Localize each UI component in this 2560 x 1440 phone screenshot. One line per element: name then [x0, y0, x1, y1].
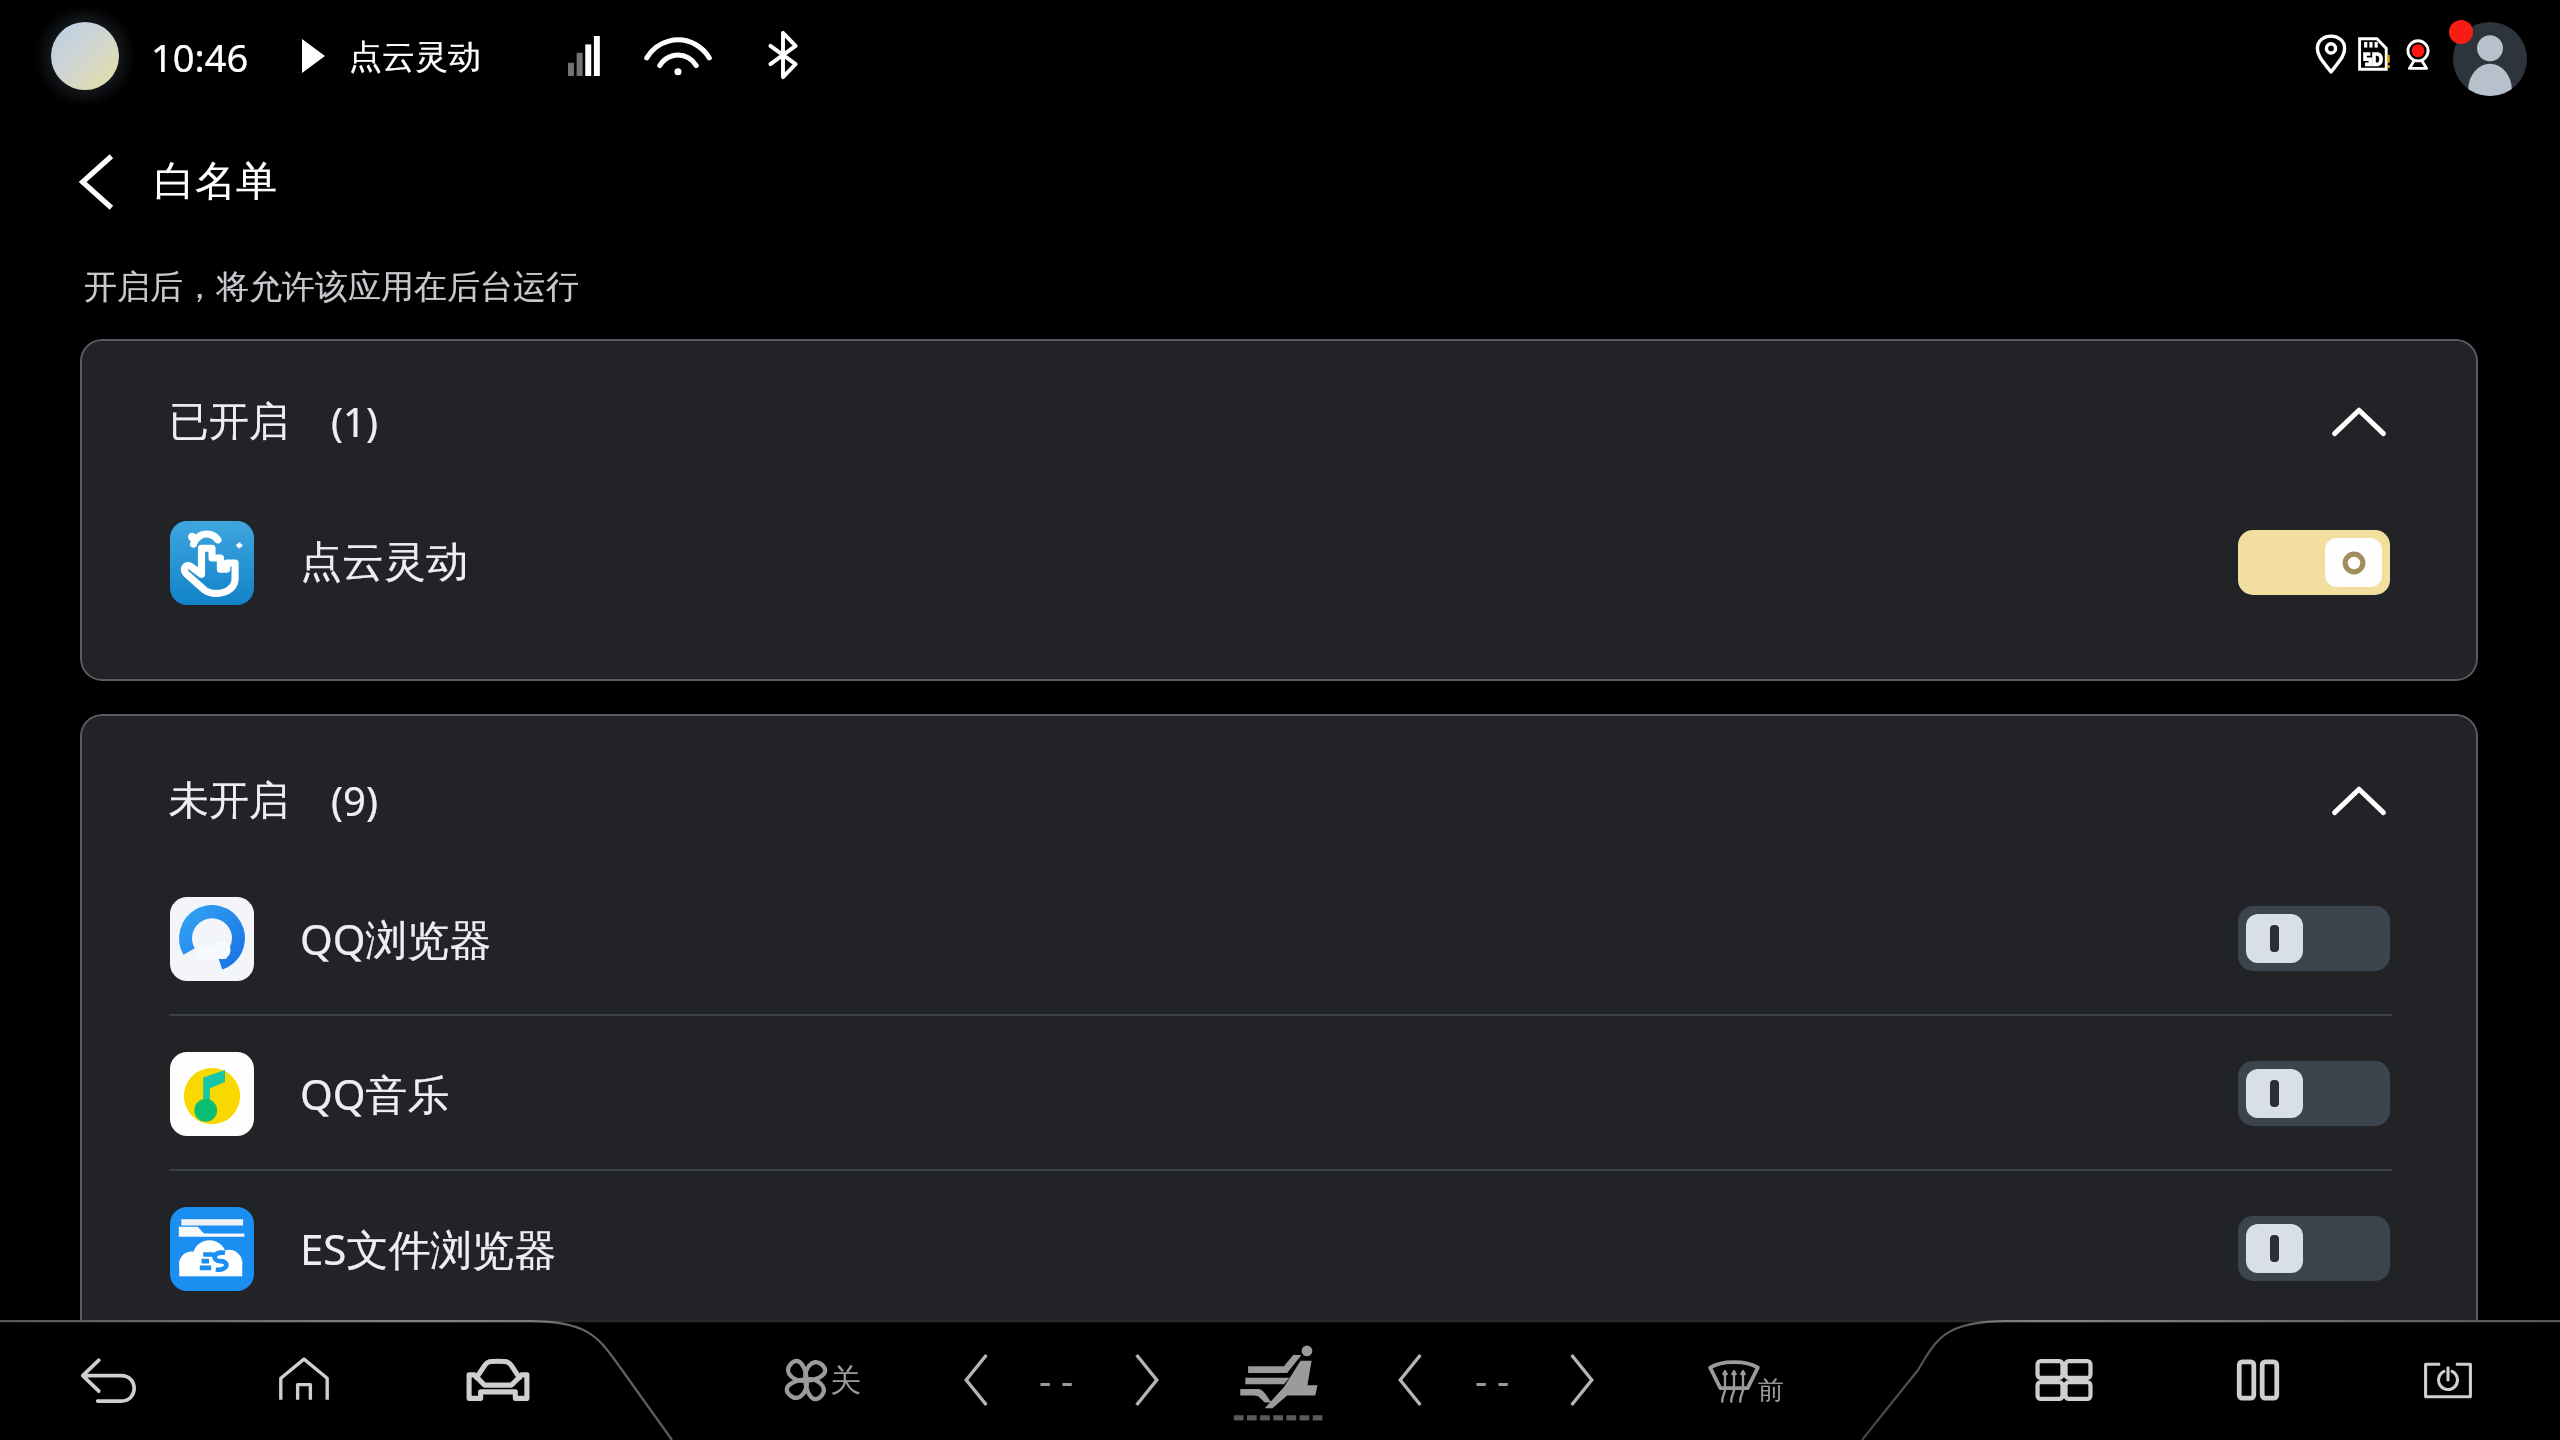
staticText: 未开启 — [169, 775, 289, 825]
button[interactable]: Back — [60, 145, 134, 219]
button[interactable]: Location — [2314, 34, 2348, 74]
button[interactable]: Increase fan — [1547, 1320, 1613, 1440]
button[interactable]: ES文件浏览器 — [170, 1172, 2390, 1325]
button[interactable]: Home — [258, 1320, 350, 1440]
button[interactable]: Back — [64, 1320, 156, 1440]
button[interactable]: 未开启 — [169, 720, 2392, 879]
staticText: - - — [1039, 1354, 1074, 1406]
staticText: 10:46 — [151, 31, 249, 83]
button[interactable]: Decrease temperature — [945, 1320, 1011, 1440]
staticText: - - — [1475, 1354, 1510, 1406]
button[interactable]: Toggle off — [2238, 1061, 2390, 1126]
staticText: 已开启 — [169, 396, 289, 446]
staticText: 白名单 — [154, 156, 277, 208]
button[interactable]: Car — [452, 1320, 544, 1440]
button[interactable]: Toggle off — [2238, 906, 2390, 971]
button[interactable]: QQ音乐 — [170, 1017, 2390, 1170]
staticText: 开启后，将允许该应用在后台运行 — [84, 266, 579, 308]
button[interactable]: Increase temperature — [1112, 1320, 1178, 1440]
button[interactable]: Collapse section — [2326, 388, 2392, 454]
button[interactable]: Assistant — [51, 22, 119, 90]
button[interactable]: Collapse section — [2326, 767, 2392, 833]
button[interactable]: Front defrost — [1688, 1320, 1780, 1440]
button[interactable]: User profile — [2453, 22, 2527, 96]
button[interactable]: Apps — [2018, 1320, 2110, 1440]
staticText: QQ音乐 — [300, 1065, 450, 1122]
button[interactable]: Seat heater — [1232, 1320, 1324, 1440]
button[interactable]: QQ浏览器 — [170, 862, 2390, 1015]
staticText: 点云灵动 — [300, 536, 468, 589]
staticText: (9) — [331, 773, 378, 827]
button[interactable]: Decrease fan — [1379, 1320, 1445, 1440]
staticText: 点云灵动 — [349, 36, 481, 78]
button[interactable]: 已开启 — [169, 341, 2392, 500]
staticText: QQ浏览器 — [300, 910, 492, 967]
button[interactable]: Toggle on — [2238, 530, 2390, 595]
button[interactable]: Toggle off — [2238, 1216, 2390, 1281]
button[interactable]: SD card — [2356, 34, 2392, 74]
button[interactable]: Split screen — [2212, 1320, 2304, 1440]
staticText: (1) — [331, 394, 378, 448]
staticText: ES文件浏览器 — [300, 1220, 557, 1277]
button[interactable]: 点云灵动 — [170, 486, 2390, 639]
button[interactable]: Fan speed — [760, 1320, 852, 1440]
button[interactable]: Camera recording — [2400, 34, 2436, 74]
button[interactable]: Power — [2402, 1320, 2494, 1440]
staticText: 前 — [1758, 1374, 1784, 1407]
staticText: 关 — [830, 1361, 861, 1400]
